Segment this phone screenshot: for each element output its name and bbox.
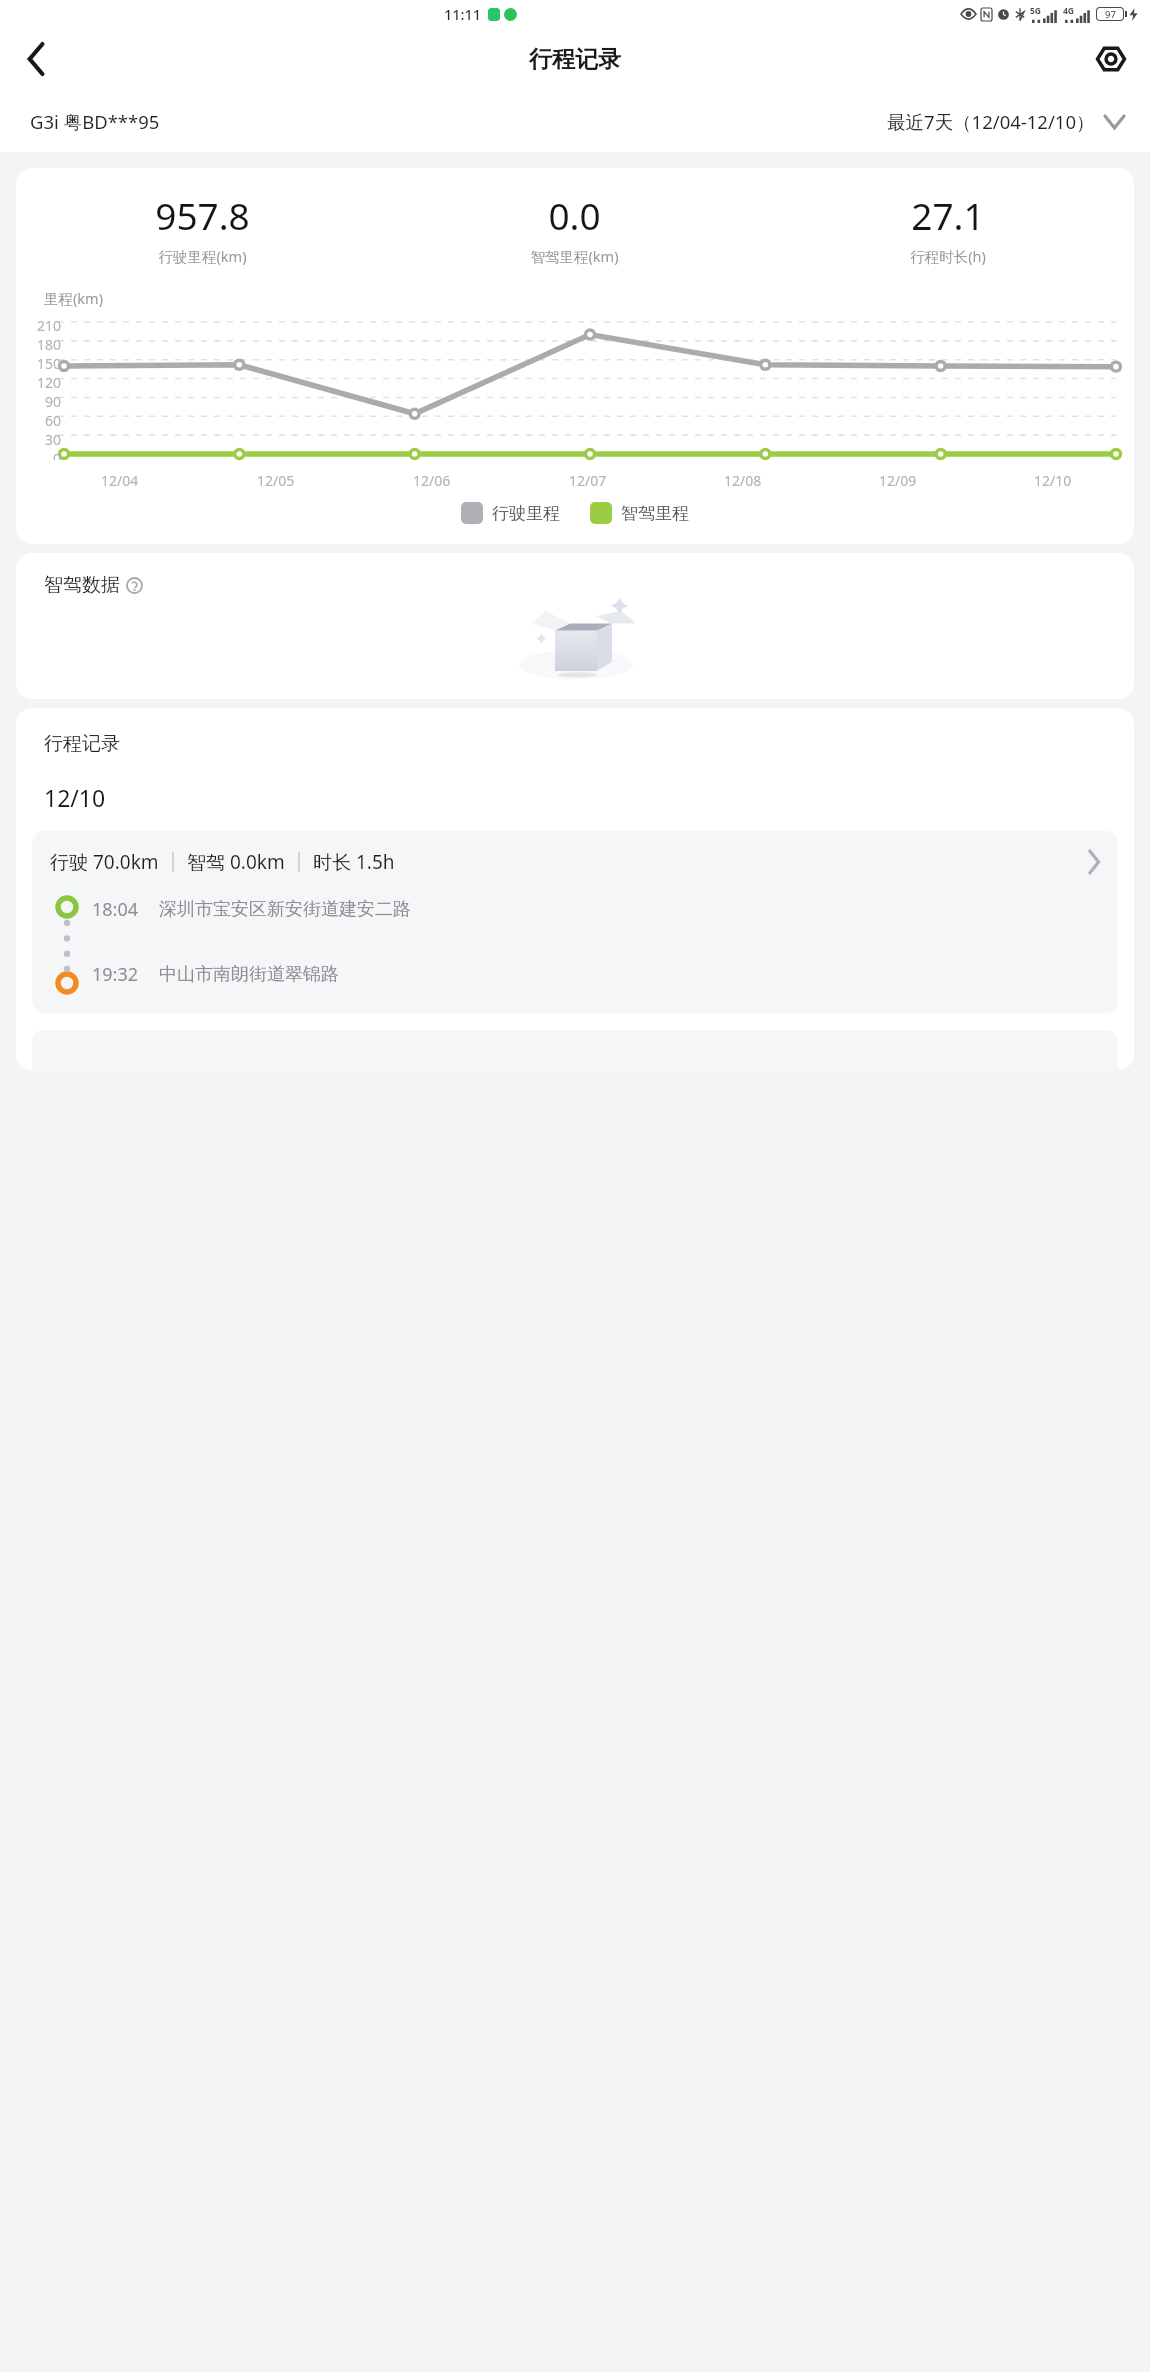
- staticText: 0.0: [548, 190, 601, 240]
- staticText: 957.8: [155, 190, 250, 240]
- staticText: 60: [45, 411, 62, 430]
- button[interactable]: G3i 粤BD***95: [30, 109, 160, 134]
- staticText: 智驾里程: [621, 503, 689, 524]
- staticText: 12/05: [257, 471, 295, 490]
- staticText: 最近7天（12/04-12/10）: [887, 109, 1095, 134]
- staticText: 12/06: [413, 471, 451, 490]
- staticText: 11:11: [444, 4, 482, 24]
- staticText: 12/08: [724, 471, 762, 490]
- button[interactable]: 27.1: [761, 190, 1134, 266]
- button[interactable]: 行驶里程: [461, 502, 560, 524]
- staticText: 5G: [1030, 5, 1042, 17]
- button[interactable]: 0.0: [388, 190, 761, 266]
- staticText: 180: [37, 335, 62, 354]
- staticText: 行程记录: [529, 45, 621, 74]
- staticText: 行程时长(h): [910, 246, 986, 266]
- staticText: 行驶 70.0km: [50, 849, 159, 875]
- staticText: 深圳市宝安区新安街道建安二路: [159, 898, 411, 921]
- button[interactable]: 957.8: [16, 190, 388, 266]
- button[interactable]: 最近7天（12/04-12/10）: [887, 109, 1128, 134]
- staticText: 智驾数据: [44, 573, 120, 597]
- staticText: 4G: [1063, 5, 1075, 17]
- staticText: 150: [37, 354, 62, 373]
- staticText: 时长 1.5h: [313, 849, 395, 875]
- staticText: 12/04: [101, 471, 139, 490]
- staticText: 行驶里程: [492, 503, 560, 524]
- staticText: 30: [45, 430, 62, 449]
- staticText: 210: [37, 316, 62, 335]
- staticText: 12/09: [879, 471, 917, 490]
- staticText: 120: [37, 373, 62, 392]
- staticText: 12/10: [1034, 471, 1072, 490]
- staticText: 97: [1105, 8, 1116, 20]
- button[interactable]: 智驾里程: [590, 502, 689, 524]
- staticText: 27.1: [911, 190, 985, 240]
- staticText: 行驶里程(km): [158, 246, 247, 266]
- staticText: 智驾里程(km): [530, 246, 619, 266]
- button[interactable]: 智驾数据: [44, 573, 143, 597]
- staticText: 18:04: [92, 897, 139, 922]
- staticText: 90: [45, 392, 62, 411]
- staticText: 行程记录: [44, 732, 120, 756]
- staticText: 0: [53, 449, 62, 460]
- button[interactable]: Back: [8, 31, 64, 87]
- button[interactable]: Settings: [1084, 32, 1138, 86]
- staticText: 12/07: [569, 471, 607, 490]
- staticText: 智驾 0.0km: [187, 849, 285, 875]
- button[interactable]: 行驶 70.0km: [32, 831, 1118, 1013]
- staticText: 19:32: [92, 962, 139, 987]
- staticText: 12/10: [44, 782, 106, 813]
- staticText: 中山市南朗街道翠锦路: [159, 963, 339, 986]
- staticText: 里程(km): [44, 288, 104, 308]
